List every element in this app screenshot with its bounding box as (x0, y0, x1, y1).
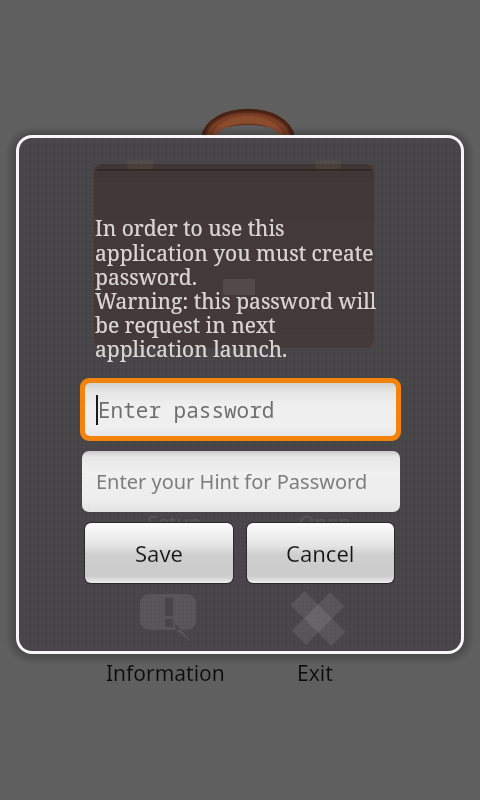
staticText: Enter your Hint for Password (96, 468, 368, 495)
staticText: Cancel (286, 538, 355, 568)
staticText: Setup (147, 509, 202, 536)
staticText: Save (135, 538, 184, 568)
staticText: Exit (297, 659, 333, 688)
button[interactable]: Cancel (247, 523, 394, 583)
staticText: Information (106, 659, 225, 688)
staticText: In order to use this application you mus… (95, 214, 377, 363)
staticText: Enter password (98, 396, 275, 425)
button[interactable]: Information (60, 652, 270, 694)
button[interactable]: Save (85, 523, 233, 583)
staticText: Open (299, 509, 351, 536)
button[interactable]: Enter password (85, 383, 396, 436)
button[interactable]: Exit (265, 652, 365, 694)
button[interactable]: Enter your Hint for Password (82, 451, 400, 512)
